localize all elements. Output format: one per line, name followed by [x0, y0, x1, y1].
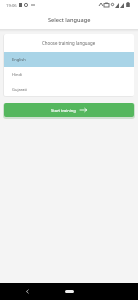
staticText: English [12, 57, 26, 62]
staticText: 19:06 [6, 3, 17, 9]
staticText: Choose training language [42, 40, 96, 46]
button[interactable]: English [4, 52, 134, 67]
staticText: Select language [48, 16, 91, 24]
button[interactable]: Start training [4, 103, 134, 117]
button[interactable]: Home [65, 290, 74, 293]
staticText: Gujarati [12, 87, 27, 92]
button[interactable]: Back [21, 285, 34, 298]
button[interactable]: Hindi [4, 67, 134, 82]
button[interactable]: Gujarati [4, 82, 134, 96]
staticText: Start training [51, 108, 76, 113]
staticText: Hindi [12, 72, 22, 77]
